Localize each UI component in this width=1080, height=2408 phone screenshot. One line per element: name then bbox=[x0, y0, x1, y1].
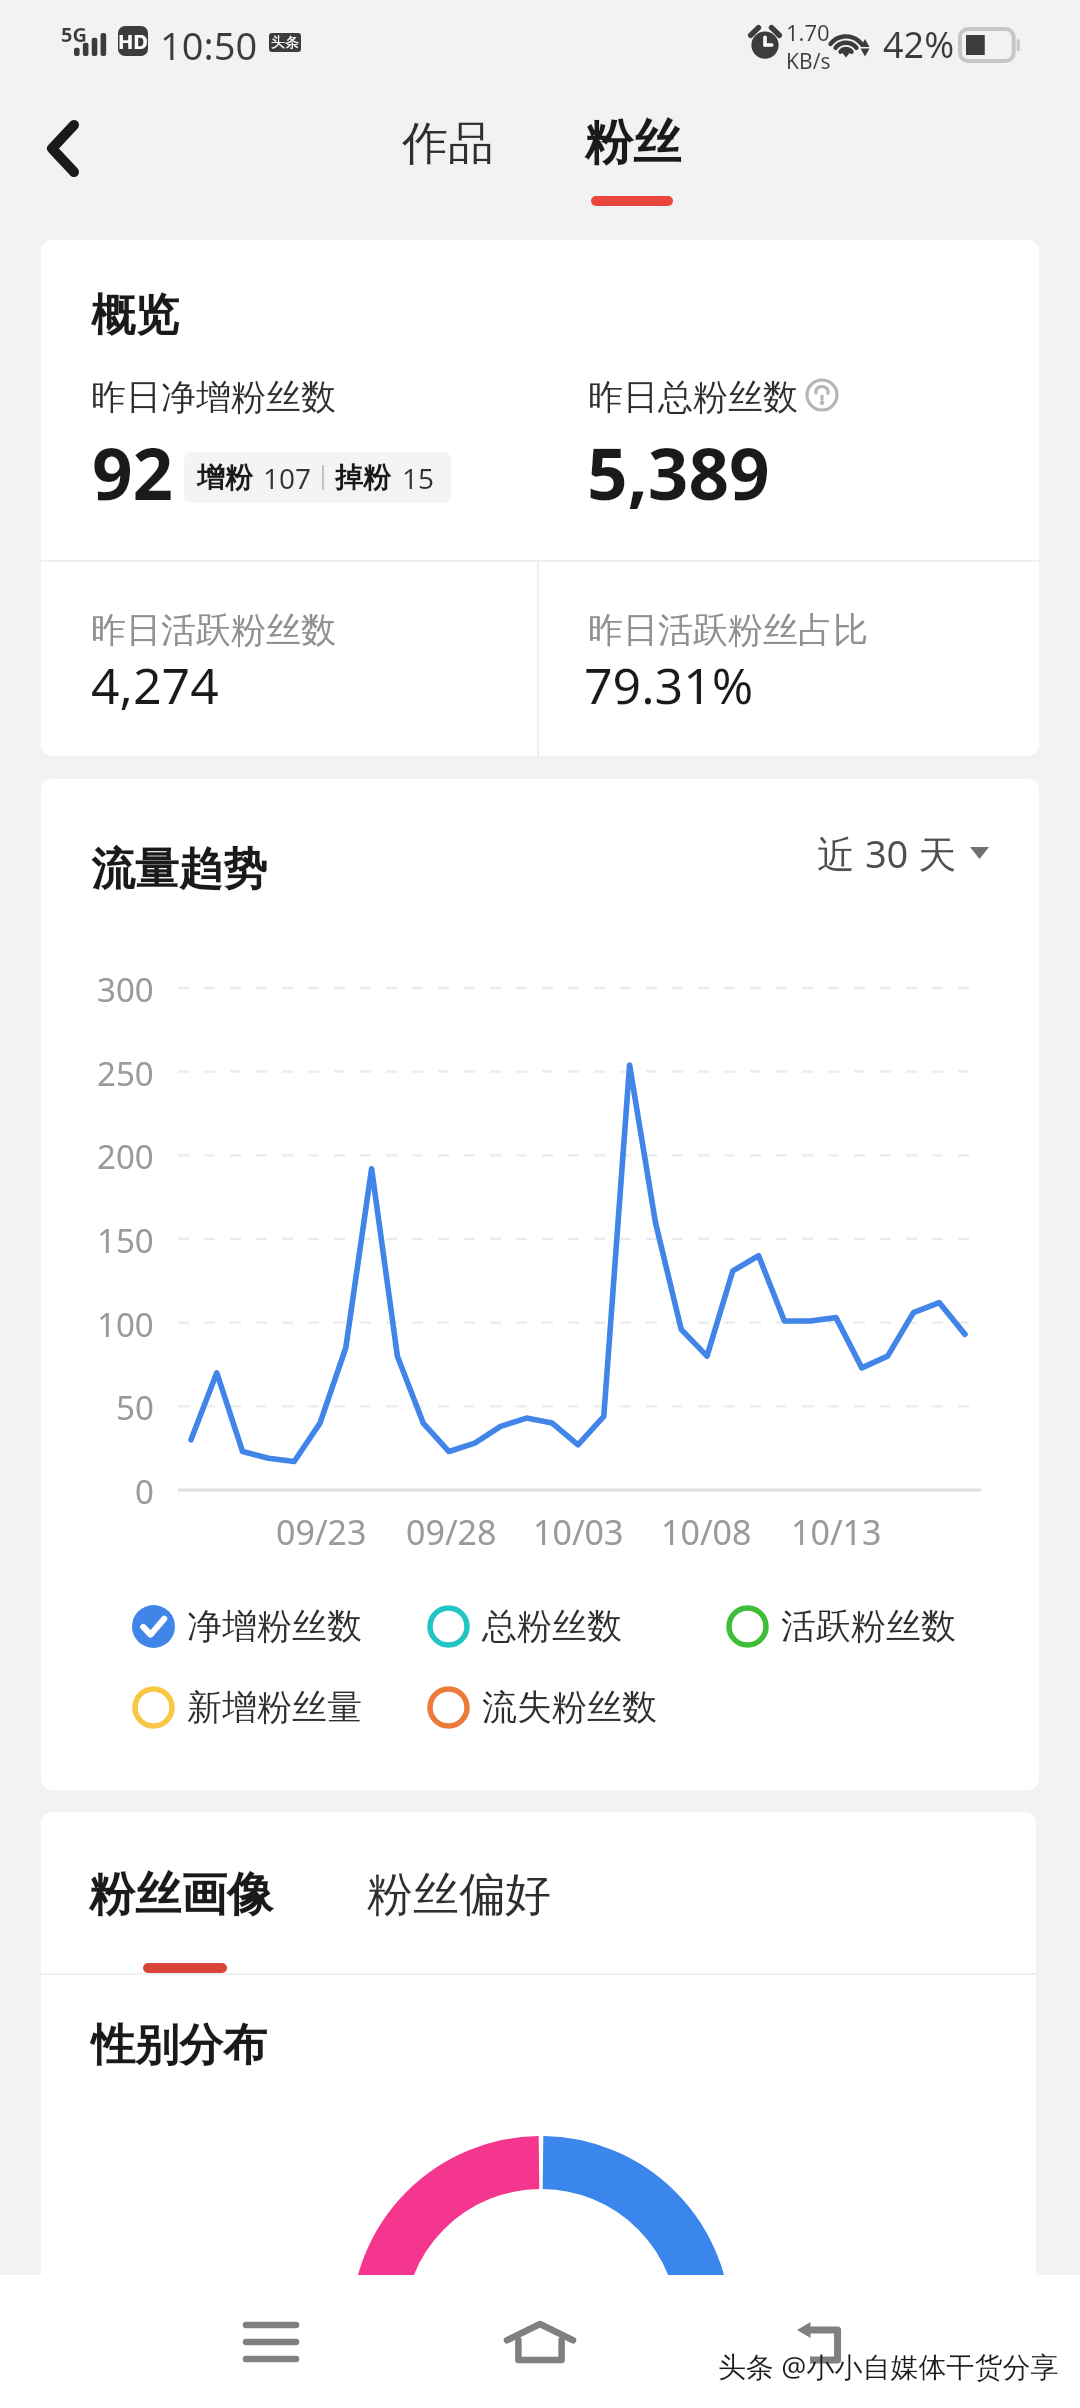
staticText: HD bbox=[118, 28, 148, 55]
button[interactable]: Recents bbox=[206, 2287, 336, 2397]
staticText: 流失粉丝数 bbox=[482, 1685, 657, 1729]
staticText: 0 bbox=[135, 1469, 154, 1514]
staticText: 250 bbox=[97, 1051, 154, 1096]
staticText: 头条 @小小自媒体干货分享 bbox=[718, 2347, 1059, 2385]
button[interactable]: Back bbox=[758, 2287, 888, 2397]
staticText: 10/13 bbox=[791, 1509, 882, 1555]
staticText: 300 bbox=[97, 967, 154, 1012]
staticText: 10/03 bbox=[533, 1509, 624, 1555]
staticText: 粉丝偏好 bbox=[367, 1866, 551, 1924]
staticText: 79.31% bbox=[584, 651, 754, 719]
button[interactable]: 粉丝 bbox=[555, 100, 710, 186]
button[interactable]: 粉丝偏好 bbox=[359, 1860, 559, 1930]
button[interactable]: 粉丝画像 bbox=[81, 1860, 281, 1930]
staticText: 200 bbox=[97, 1134, 154, 1179]
staticText: 昨日净增粉丝数 bbox=[91, 375, 336, 419]
button[interactable]: 总粉丝数 bbox=[427, 1597, 622, 1655]
staticText: 10/08 bbox=[661, 1509, 752, 1555]
staticText: 掉粉 bbox=[335, 460, 391, 495]
button[interactable]: 流失粉丝数 bbox=[427, 1678, 657, 1736]
staticText: 概览 bbox=[91, 288, 179, 343]
staticText: 15 bbox=[402, 459, 435, 497]
staticText: 近 30 天 bbox=[817, 827, 957, 879]
staticText: 粉丝 bbox=[585, 113, 681, 173]
staticText: KB/s bbox=[786, 47, 831, 76]
staticText: 昨日活跃粉丝占比 bbox=[588, 608, 868, 652]
staticText: 增粉 bbox=[197, 460, 253, 495]
staticText: 1.70 bbox=[786, 17, 830, 47]
button[interactable]: 近 30 天 bbox=[811, 821, 995, 885]
staticText: 5,389 bbox=[587, 424, 770, 521]
staticText: 净增粉丝数 bbox=[187, 1604, 362, 1648]
staticText: 头条 bbox=[271, 34, 299, 52]
button[interactable]: 净增粉丝数 bbox=[132, 1597, 362, 1655]
button[interactable]: 作品 bbox=[370, 106, 525, 182]
staticText: 10:50 bbox=[160, 19, 258, 71]
staticText: 总粉丝数 bbox=[482, 1604, 622, 1648]
staticText: 107 bbox=[263, 459, 312, 497]
staticText: 昨日活跃粉丝数 bbox=[91, 608, 336, 652]
staticText: 昨日总粉丝数 bbox=[588, 375, 798, 419]
staticText: 09/28 bbox=[406, 1509, 497, 1555]
staticText: 流量趋势 bbox=[91, 842, 267, 897]
button[interactable]: 活跃粉丝数 bbox=[726, 1597, 956, 1655]
staticText: 150 bbox=[97, 1218, 154, 1263]
staticText: 作品 bbox=[402, 115, 494, 173]
staticText: 42% bbox=[883, 20, 955, 69]
staticText: 新增粉丝量 bbox=[187, 1685, 362, 1729]
staticText: 09/23 bbox=[276, 1509, 367, 1555]
staticText: 100 bbox=[97, 1302, 154, 1347]
button[interactable]: Back bbox=[23, 108, 103, 188]
staticText: 50 bbox=[116, 1385, 154, 1430]
button[interactable]: 新增粉丝量 bbox=[132, 1678, 362, 1736]
button[interactable]: Home bbox=[475, 2287, 605, 2397]
staticText: 性别分布 bbox=[91, 2018, 267, 2073]
staticText: 粉丝画像 bbox=[89, 1866, 273, 1924]
staticText: 5G bbox=[61, 21, 87, 48]
staticText: 活跃粉丝数 bbox=[781, 1604, 956, 1648]
staticText: 92 bbox=[92, 424, 174, 521]
staticText: 4,274 bbox=[91, 651, 219, 719]
